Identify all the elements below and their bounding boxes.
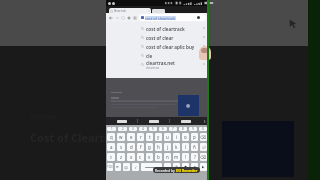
button[interactable]: Sticker	[173, 163, 180, 171]
staticText: ⊕	[175, 165, 179, 169]
staticText: Cost of Cleartrack	[30, 130, 129, 145]
staticText: o	[184, 134, 187, 140]
staticText: g	[148, 144, 151, 150]
button[interactable]: Key 6	[159, 127, 167, 131]
button[interactable]: Key z	[117, 153, 125, 161]
button[interactable]: Key 8	[179, 127, 187, 131]
button[interactable]: Menu	[132, 14, 138, 22]
button[interactable]: Emoji	[123, 163, 130, 171]
staticText: c	[139, 154, 142, 160]
button[interactable]: Key o	[182, 133, 189, 141]
button[interactable]: Key j	[164, 143, 171, 151]
button[interactable]: Reload	[120, 14, 126, 22]
staticText: f	[140, 144, 142, 150]
button[interactable]: Key 1	[107, 127, 116, 131]
button[interactable]: Key n	[164, 153, 171, 161]
button[interactable]: Mic	[182, 163, 189, 171]
staticText: r	[140, 134, 142, 140]
button[interactable]: Period	[164, 163, 171, 171]
button[interactable]: Key ⌫	[200, 133, 207, 141]
staticText: 8	[182, 127, 184, 131]
button[interactable]: Key i	[173, 133, 180, 141]
button[interactable]: Key 4	[139, 127, 147, 131]
button[interactable]: cost of cleartrack	[141, 24, 205, 33]
button[interactable]: Key ñ	[191, 143, 198, 151]
button[interactable]: Key ⏎	[200, 143, 207, 151]
button[interactable]: cleartrax.net	[141, 60, 205, 69]
button[interactable]: Forward	[114, 14, 120, 22]
staticText: DU Recorder	[176, 168, 198, 173]
button[interactable]: Key v	[146, 153, 153, 161]
button[interactable]: Key s	[117, 143, 125, 151]
button[interactable]: Key 0	[199, 127, 207, 131]
button[interactable]: Key 5	[149, 127, 157, 131]
button[interactable]: Key u	[164, 133, 171, 141]
staticText: 1	[111, 127, 113, 131]
button[interactable]: Key f	[137, 143, 144, 151]
button[interactable]: Key p	[191, 133, 198, 141]
button[interactable]: Symbols	[107, 163, 113, 171]
staticText: cost of clear aplic buy	[146, 44, 195, 50]
button[interactable]: Space	[141, 163, 162, 171]
button[interactable]: Key ⌫	[200, 153, 207, 161]
staticText: ▶	[202, 165, 205, 169]
button[interactable]: Key g	[146, 143, 153, 151]
button[interactable]: cost of clear aplic buy	[141, 42, 205, 51]
button[interactable]: Key t	[146, 133, 153, 141]
staticText: z	[120, 154, 123, 160]
button[interactable]: Key h	[155, 143, 162, 151]
button[interactable]: Right	[200, 163, 207, 171]
button[interactable]	[138, 117, 169, 125]
staticText: /	[135, 165, 137, 170]
button[interactable]: Key l	[182, 143, 189, 151]
button[interactable]: Key a	[107, 143, 115, 151]
button[interactable]: Key 2	[118, 127, 127, 131]
button[interactable]: Language	[115, 163, 121, 171]
button[interactable]: Key k	[173, 143, 180, 151]
button[interactable]: Key 9	[189, 127, 197, 131]
button[interactable]: Key 7	[169, 127, 177, 131]
button[interactable]: New tab	[109, 8, 151, 14]
button[interactable]: Back	[108, 14, 114, 22]
button[interactable]: Key x	[127, 153, 135, 161]
button[interactable]: cost of cleartrack	[141, 14, 200, 21]
staticText: ●	[184, 165, 188, 169]
staticText: ☺	[124, 165, 129, 170]
button[interactable]: Key c	[137, 153, 144, 161]
staticText: s	[120, 144, 123, 150]
button[interactable]: More suggestions	[201, 117, 208, 125]
button[interactable]: Left	[191, 163, 198, 171]
button[interactable]	[152, 9, 165, 13]
button[interactable]: Key ⇧	[107, 153, 115, 161]
staticText: ◀	[193, 165, 196, 169]
staticText: 6	[162, 127, 164, 131]
staticText: x	[130, 154, 133, 160]
button[interactable]: Key ?	[191, 153, 198, 161]
button[interactable]: New tab	[126, 14, 132, 22]
staticText: m	[174, 154, 179, 160]
staticText: u	[166, 134, 169, 140]
button[interactable]: Clear	[197, 16, 200, 19]
button[interactable]: Key d	[127, 143, 135, 151]
staticText: ?	[194, 154, 196, 160]
staticText: 2	[122, 127, 124, 131]
button[interactable]: Key !	[182, 153, 189, 161]
button[interactable]: Key w	[117, 133, 125, 141]
button[interactable]: Key m	[173, 153, 180, 161]
button[interactable]: Key 3	[129, 127, 137, 131]
button[interactable]: Slash	[132, 163, 139, 171]
button[interactable]	[170, 117, 201, 125]
staticText: k	[175, 144, 178, 150]
button[interactable]: Key e	[127, 133, 135, 141]
staticText: 3	[132, 127, 134, 131]
button[interactable]: cost of clear	[141, 33, 205, 42]
button[interactable]: cle	[141, 51, 205, 60]
staticText: d	[130, 144, 133, 150]
staticText: p	[193, 134, 196, 140]
button[interactable]: Key y	[155, 133, 162, 141]
button[interactable]: Key b	[155, 153, 162, 161]
button[interactable]: Key r	[137, 133, 144, 141]
button[interactable]	[106, 117, 137, 125]
button[interactable]: Key q	[107, 133, 115, 141]
staticText: 9	[192, 127, 194, 131]
